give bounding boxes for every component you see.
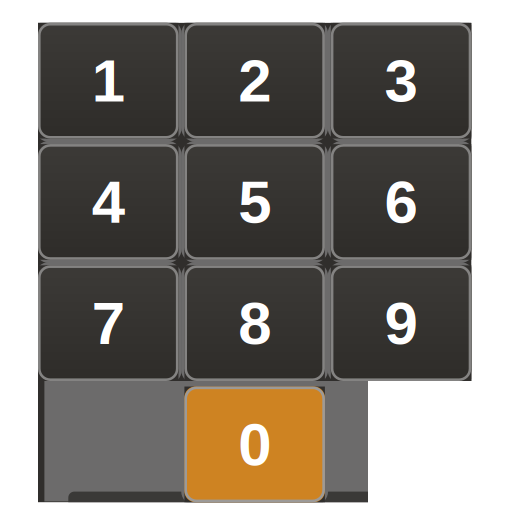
button[interactable]: 3 — [331, 23, 471, 139]
staticText: 0 — [238, 411, 271, 478]
staticText: 1 — [92, 47, 125, 114]
staticText: 4 — [92, 168, 125, 235]
staticText: 6 — [385, 168, 418, 235]
staticText: 5 — [238, 168, 271, 235]
staticText: 7 — [92, 290, 125, 357]
button[interactable]: 2 — [184, 23, 325, 139]
button[interactable]: 6 — [331, 144, 471, 260]
button[interactable]: 4 — [38, 144, 178, 260]
button[interactable]: 5 — [184, 144, 325, 260]
button[interactable]: 0 — [184, 386, 325, 502]
staticText: 9 — [385, 290, 418, 357]
button[interactable]: 1 — [38, 23, 178, 139]
button[interactable]: 8 — [184, 265, 325, 381]
button[interactable]: 9 — [331, 265, 471, 381]
staticText: 3 — [385, 47, 418, 114]
button[interactable]: 7 — [38, 265, 178, 381]
staticText: 8 — [238, 290, 271, 357]
staticText: 2 — [238, 47, 271, 114]
